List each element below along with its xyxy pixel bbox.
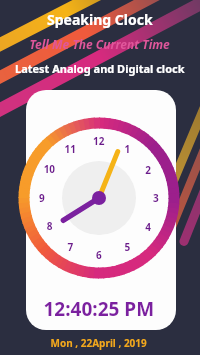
button[interactable] <box>0 0 200 355</box>
other: Analog clock face <box>0 0 160 160</box>
